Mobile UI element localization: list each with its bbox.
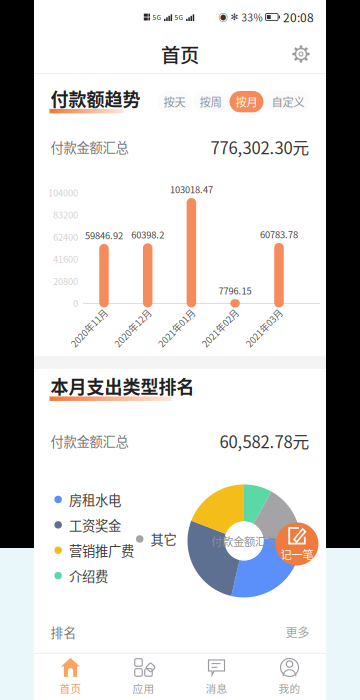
staticText: 按周	[199, 93, 221, 110]
staticText: 介绍费	[69, 566, 108, 585]
staticText: 按月	[235, 93, 257, 110]
staticText: 工资奖金	[69, 515, 121, 534]
staticText: 5G	[175, 12, 184, 22]
staticText: 33%	[242, 10, 263, 24]
staticText: 59846.92	[85, 228, 123, 242]
button[interactable]: 按月	[229, 91, 263, 112]
staticText: 41600	[53, 252, 78, 265]
button[interactable]: 我的	[253, 653, 326, 700]
staticText: ◉	[219, 10, 228, 24]
staticText: 2020年11月	[65, 321, 113, 334]
button[interactable]: 按天	[157, 91, 191, 112]
staticText: 房租水电	[69, 490, 121, 509]
staticText: 其它	[150, 529, 176, 549]
staticText: 2021年01月	[152, 321, 200, 334]
staticText: 付款金额汇总	[211, 533, 277, 549]
staticText: 排名	[50, 623, 76, 641]
staticText: 776,302.30元	[210, 135, 309, 159]
staticText: 104000	[48, 186, 78, 199]
button[interactable]: 自定义	[265, 91, 310, 112]
staticText: 付款额趋势	[50, 85, 140, 111]
button[interactable]: 更多	[285, 623, 309, 641]
staticText: 7796.15	[219, 284, 252, 297]
button[interactable]: 应用	[107, 653, 180, 700]
staticText: 首页	[59, 680, 81, 696]
staticText: 60398.2	[131, 228, 164, 241]
staticText: 62400	[53, 230, 78, 243]
staticText: 本月支出类型排名	[50, 373, 194, 399]
staticText: 20800	[53, 274, 78, 288]
staticText: 按天	[163, 93, 185, 110]
staticText: 2021年03月	[240, 321, 288, 334]
staticText: 60783.78	[260, 227, 298, 241]
button[interactable]: 记一笔	[275, 522, 318, 565]
button[interactable]: 消息	[180, 653, 253, 700]
button[interactable]: 设置	[282, 37, 320, 71]
staticText: 5G	[152, 12, 161, 22]
staticText: ✻	[231, 12, 239, 22]
staticText: 2020年12月	[109, 321, 157, 334]
staticText: 83200	[53, 208, 78, 221]
staticText: 付款金额汇总	[50, 431, 128, 451]
staticText: 自定义	[271, 93, 304, 110]
button[interactable]: 首页	[34, 653, 107, 700]
staticText: 首页	[161, 40, 199, 68]
staticText: 营销推广费	[69, 541, 134, 560]
staticText: 我的	[278, 680, 300, 696]
staticText: 应用	[132, 680, 154, 696]
staticText: 记一笔	[280, 546, 313, 562]
staticText: 付款金额汇总	[50, 137, 128, 157]
staticText: 103018.47	[170, 182, 213, 196]
staticText: 消息	[205, 680, 227, 696]
button[interactable]: 按周	[193, 91, 227, 112]
staticText: 20:08	[283, 8, 314, 26]
staticText: 0	[73, 296, 78, 310]
staticText: 更多	[285, 623, 309, 641]
staticText: 2021年02月	[196, 321, 244, 334]
staticText: 60,582.78元	[219, 429, 309, 453]
